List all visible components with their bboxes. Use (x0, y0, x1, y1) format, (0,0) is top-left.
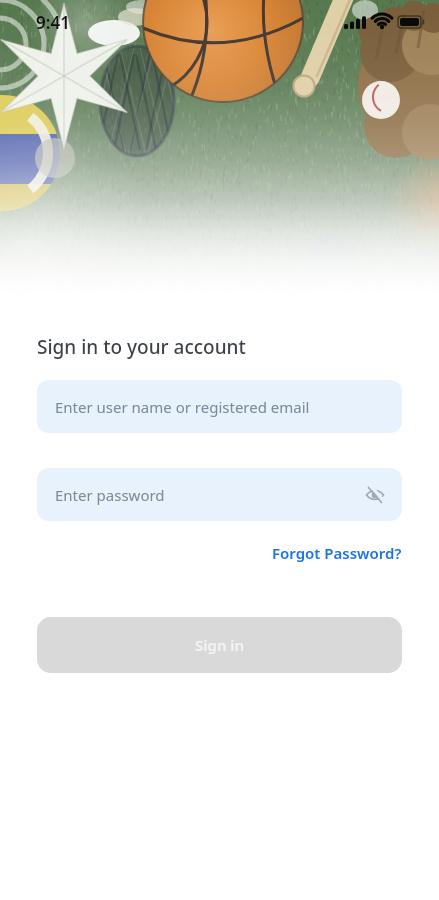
staticText: Sign in (195, 635, 245, 655)
staticText: Enter user name or registered email (55, 397, 310, 417)
button[interactable]: Enter password (37, 468, 402, 521)
button[interactable]: Enter user name or registered email (37, 380, 402, 433)
staticText: 9:41 (36, 11, 70, 34)
button[interactable]: Sign in (37, 617, 402, 673)
staticText: Sign in to your account (37, 334, 246, 360)
button[interactable]: Forgot Password? (272, 543, 402, 563)
staticText: Enter password (55, 485, 165, 505)
